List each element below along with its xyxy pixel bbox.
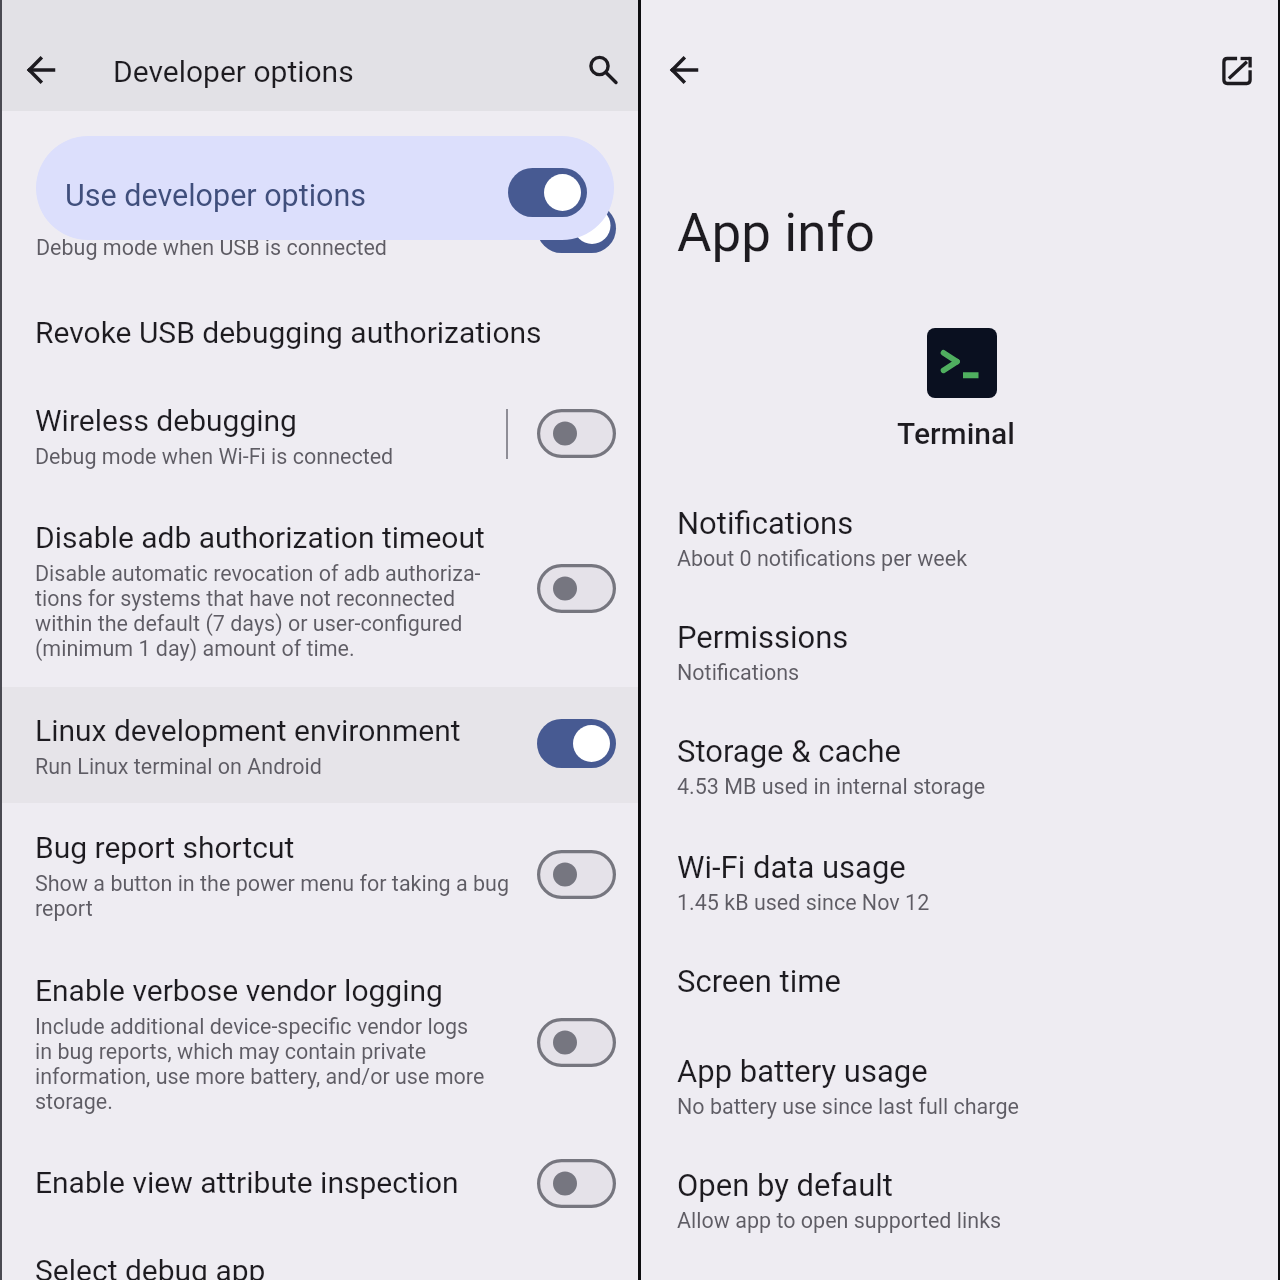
staticText: Debug mode when Wi-Fi is connected (35, 444, 394, 469)
staticText: 1.45 kB used since Nov 12 (677, 890, 930, 915)
button[interactable]: Back (656, 42, 712, 98)
staticText: Debug mode when USB is connected (36, 235, 387, 260)
button[interactable]: Screen time (641, 954, 1280, 1016)
staticText: Enable verbose vendor logging (35, 973, 443, 1008)
button[interactable]: On (537, 719, 616, 768)
staticText: Notifications (677, 660, 800, 685)
staticText: Disable adb authorization timeout (35, 520, 485, 555)
button[interactable]: Disable adb authorization timeout (0, 506, 638, 676)
button[interactable]: Off (537, 564, 616, 613)
staticText: App info (677, 202, 876, 264)
button[interactable]: Select debug app (0, 1238, 638, 1280)
button[interactable]: Open in new window (1209, 43, 1265, 99)
button[interactable]: Off (537, 409, 616, 458)
staticText: Select debug app (35, 1253, 266, 1280)
button[interactable]: USB debugging, on (537, 204, 616, 253)
staticText: Linux development environment (35, 713, 461, 748)
staticText: Use developer options (65, 178, 367, 214)
button[interactable]: Linux development environment (0, 687, 638, 803)
button[interactable]: App battery usage, No battery use since … (641, 1044, 1280, 1140)
button[interactable]: Off (537, 1159, 616, 1208)
staticText: Wireless debugging (35, 403, 297, 438)
staticText: Developer options (113, 54, 354, 89)
staticText: No battery use since last full charge (677, 1094, 1019, 1119)
button[interactable]: Back (13, 42, 69, 98)
button[interactable]: Terminal app icon (927, 328, 997, 398)
button[interactable]: Enable verbose vendor logging (0, 960, 638, 1120)
staticText: Disable automatic revocation of adb auth… (35, 561, 481, 661)
button[interactable]: Wi-Fi data usage, 1.45 kB used since Nov… (641, 840, 1280, 936)
staticText: Storage & cache (677, 733, 902, 769)
button[interactable]: Permissions, Notifications (641, 610, 1280, 706)
staticText: 4.53 MB used in internal storage (677, 774, 986, 799)
staticText: Include additional device-specific vendo… (35, 1014, 485, 1114)
staticText: Run Linux terminal on Android (35, 754, 322, 779)
button[interactable]: Use developer options (36, 136, 614, 240)
staticText: Bug report shortcut (35, 830, 295, 865)
button[interactable]: Storage & cache, 4.53 MB used in interna… (641, 724, 1280, 820)
staticText: Terminal (897, 416, 1015, 451)
staticText: App battery usage (677, 1053, 928, 1089)
button[interactable]: Search (574, 41, 630, 97)
button[interactable]: Enable view attribute inspection (0, 1146, 638, 1220)
staticText: Permissions (677, 619, 849, 655)
button[interactable]: Wireless debugging (0, 396, 638, 492)
staticText: Allow app to open supported links (677, 1208, 1002, 1233)
button[interactable]: Off (537, 850, 616, 899)
button[interactable]: Off (537, 1018, 616, 1067)
staticText: Open by default (677, 1167, 893, 1203)
staticText: Revoke USB debugging authorizations (35, 315, 542, 350)
button[interactable]: Bug report shortcut (0, 820, 638, 932)
staticText: Enable view attribute inspection (35, 1165, 459, 1200)
staticText: Screen time (677, 963, 841, 999)
button[interactable]: On (508, 168, 587, 217)
staticText: Wi-Fi data usage (677, 849, 906, 885)
button[interactable]: Notifications, About 0 notifications per… (641, 496, 1280, 592)
button[interactable]: Revoke USB debugging authorizations (0, 286, 638, 360)
staticText: About 0 notifications per week (677, 546, 968, 571)
staticText: Notifications (677, 505, 854, 541)
button[interactable]: Open by default, Allow app to open suppo… (641, 1158, 1280, 1254)
staticText: Show a button in the power menu for taki… (35, 871, 510, 921)
